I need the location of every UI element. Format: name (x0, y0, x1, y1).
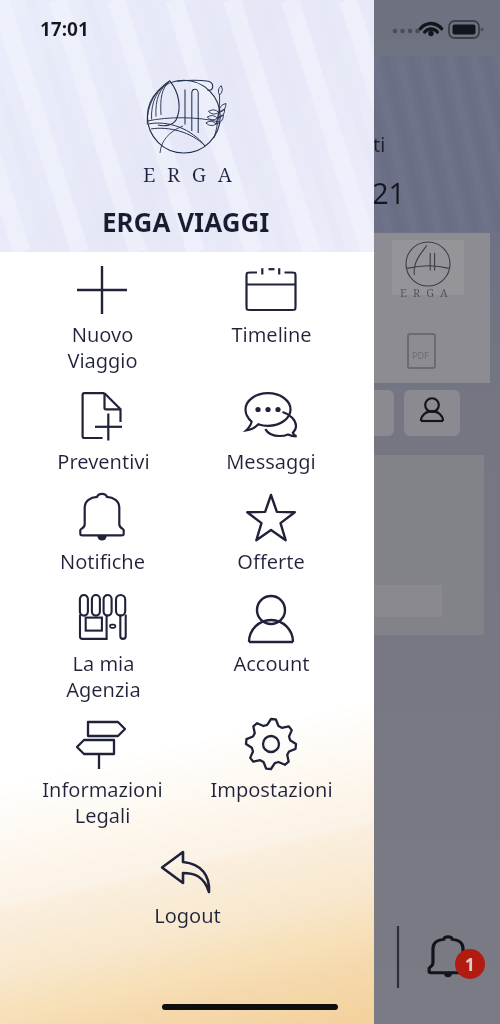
button[interactable]: Preventivi (28, 382, 178, 476)
staticText: Account (233, 650, 310, 677)
staticText: Timeline (231, 321, 312, 348)
staticText: ERGA VIAGGI (102, 204, 270, 239)
staticText: La mia Agenzia (66, 650, 141, 703)
staticText: Messaggi (226, 448, 316, 475)
staticText: Offerte (237, 548, 305, 575)
staticText: 21 (372, 173, 406, 212)
staticText: Impostazioni (210, 776, 333, 803)
button[interactable]: La mia Agenzia (28, 584, 178, 704)
button[interactable]: Logout (112, 840, 262, 930)
staticText: Notifiche (60, 548, 145, 575)
staticText: Informazioni Legali (42, 776, 163, 829)
staticText: Preventivi (57, 448, 150, 475)
staticText: E R G A (400, 285, 450, 300)
button[interactable]: Messaggi (196, 382, 346, 476)
staticText: 17:01 (40, 16, 89, 42)
staticText: ti (373, 131, 386, 158)
staticText: 1 (465, 953, 475, 976)
staticText: E R G A (143, 161, 235, 188)
button[interactable]: Account (196, 583, 346, 678)
button[interactable]: Nuovo Viaggio (27, 256, 177, 375)
button[interactable]: Notifiche (27, 483, 177, 576)
button[interactable]: Informazioni Legali (27, 709, 177, 830)
staticText: PDF (412, 349, 429, 361)
button[interactable]: Impostazioni (196, 708, 346, 804)
staticText: Logout (154, 902, 221, 929)
staticText: Nuovo Viaggio (67, 321, 138, 374)
button[interactable]: Timeline (196, 257, 346, 349)
button[interactable]: Offerte (196, 484, 346, 576)
